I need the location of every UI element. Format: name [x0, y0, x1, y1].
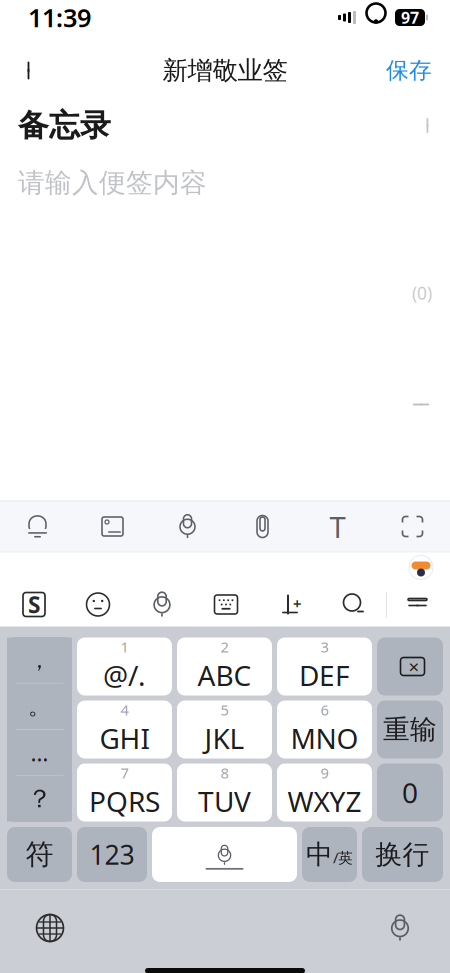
button[interactable]: TUV [177, 763, 272, 821]
staticText: 3 [320, 637, 328, 657]
staticText: ABC [197, 657, 251, 694]
staticText: /英 [333, 848, 353, 867]
staticText: × [408, 654, 419, 679]
button[interactable]: ？ [7, 776, 72, 821]
button[interactable]: 备忘录 [0, 96, 450, 154]
button[interactable]: 重输 [377, 700, 443, 758]
button[interactable]: 语音 [150, 500, 225, 552]
button[interactable]: 。 [7, 684, 72, 729]
button[interactable]: 扫描 [375, 500, 450, 552]
staticText: 4 [120, 700, 128, 720]
button[interactable]: 语音输入 [130, 582, 194, 626]
staticText: 符 [25, 837, 53, 872]
staticText: MNO [290, 720, 358, 757]
staticText: 。 [28, 692, 51, 720]
staticText: 123 [89, 837, 134, 872]
button[interactable]: 图片 [75, 500, 150, 552]
staticText: DEF [299, 657, 350, 694]
button[interactable]: 返回 [8, 48, 52, 92]
button[interactable]: JKL [177, 700, 272, 758]
button[interactable]: 空格 [152, 827, 297, 882]
staticText: 新增敬业签 [162, 55, 287, 86]
button[interactable]: 符 [7, 827, 72, 882]
button[interactable]: 中 [302, 827, 357, 882]
button[interactable]: 换行 [362, 827, 443, 882]
staticText: 中 [306, 838, 333, 871]
staticText: + [293, 594, 301, 613]
staticText: GHI [99, 720, 149, 757]
button[interactable]: 附件 [225, 500, 300, 552]
staticText: 1 [120, 637, 128, 657]
button[interactable]: PQRS [77, 763, 172, 821]
button[interactable]: 搜狗输入法 [2, 582, 66, 626]
staticText: ？ [27, 783, 52, 814]
button[interactable]: ABC [177, 637, 272, 695]
staticText: PQRS [89, 783, 160, 820]
staticText: JKL [204, 720, 244, 757]
button[interactable]: 123 [77, 827, 147, 882]
staticText: 0 [402, 774, 418, 811]
button[interactable]: 删除 [377, 637, 443, 695]
button[interactable]: GHI [77, 700, 172, 758]
staticText: @/. [103, 657, 146, 694]
button[interactable]: @/. [77, 637, 172, 695]
button[interactable]: 收起 [398, 382, 444, 426]
button[interactable]: 切换键盘 [18, 900, 82, 956]
button[interactable]: MNO [277, 700, 372, 758]
staticText: 请输入便签内容 [18, 166, 207, 199]
staticText: ， [28, 646, 51, 674]
button[interactable]: 收起键盘 [387, 582, 448, 626]
staticText: WXYZ [287, 783, 361, 820]
staticText: 5 [220, 700, 228, 720]
staticText: T [329, 507, 345, 546]
staticText: 7 [120, 763, 128, 783]
button[interactable]: 保存 [376, 48, 442, 92]
button[interactable]: ， [7, 637, 72, 683]
button[interactable]: 搜索 [322, 582, 386, 626]
staticText: … [30, 738, 48, 768]
staticText: 换行 [375, 838, 429, 871]
button[interactable]: 键盘设置 [194, 582, 258, 626]
staticText: S [28, 589, 40, 619]
staticText: (0) [412, 281, 432, 304]
staticText: 2 [220, 637, 228, 657]
staticText: 8 [220, 763, 228, 783]
staticText: TUV [198, 783, 251, 820]
button[interactable]: 文字格式 [300, 500, 375, 552]
staticText: 6 [320, 700, 328, 720]
staticText: 保存 [386, 57, 432, 84]
button[interactable]: WXYZ [277, 763, 372, 821]
staticText: 备忘录 [18, 107, 111, 144]
staticText: 97 [401, 7, 419, 28]
button[interactable]: 提醒 [0, 500, 75, 552]
staticText: 9 [320, 763, 328, 783]
button[interactable]: 表情 [66, 582, 130, 626]
button[interactable]: 0 [377, 763, 443, 821]
staticText: 重输 [383, 713, 437, 746]
button[interactable]: 手写 [258, 582, 322, 626]
button[interactable]: … [7, 730, 72, 775]
staticText: 11:39 [28, 1, 91, 34]
button[interactable]: 助手 [404, 552, 438, 582]
button[interactable]: DEF [277, 637, 372, 695]
button[interactable]: 语音输入 [368, 900, 432, 956]
